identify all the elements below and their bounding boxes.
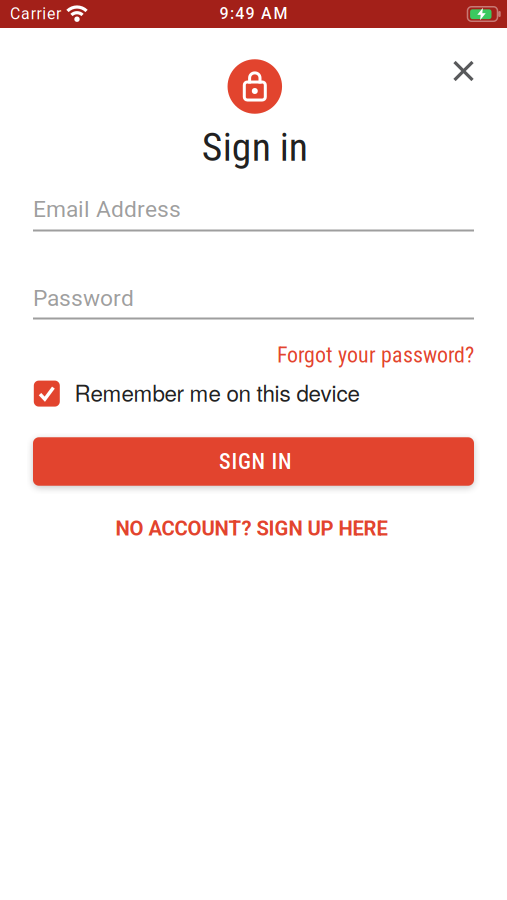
button[interactable]: SIGN IN <box>33 437 474 486</box>
textField[interactable]: Password <box>33 276 474 322</box>
textField[interactable]: Email Address <box>33 187 474 233</box>
staticText: Forgot your password? <box>277 342 474 368</box>
button[interactable]: NO ACCOUNT? SIGN UP HERE <box>115 517 387 540</box>
staticText: Email Address <box>33 196 181 223</box>
button[interactable]: Forgot your password? <box>33 342 474 368</box>
staticText: Remember me on this device <box>74 376 359 408</box>
staticText: SIGN IN <box>219 449 292 474</box>
button[interactable] <box>445 53 481 89</box>
staticText: NO ACCOUNT? SIGN UP HERE <box>115 517 387 540</box>
staticText: Carrier <box>10 4 61 23</box>
staticText: Sign in <box>202 124 308 170</box>
staticText: Password <box>33 285 134 311</box>
staticText: 9:49 AM <box>220 4 287 23</box>
button[interactable]: Remember me on this device <box>33 376 474 408</box>
